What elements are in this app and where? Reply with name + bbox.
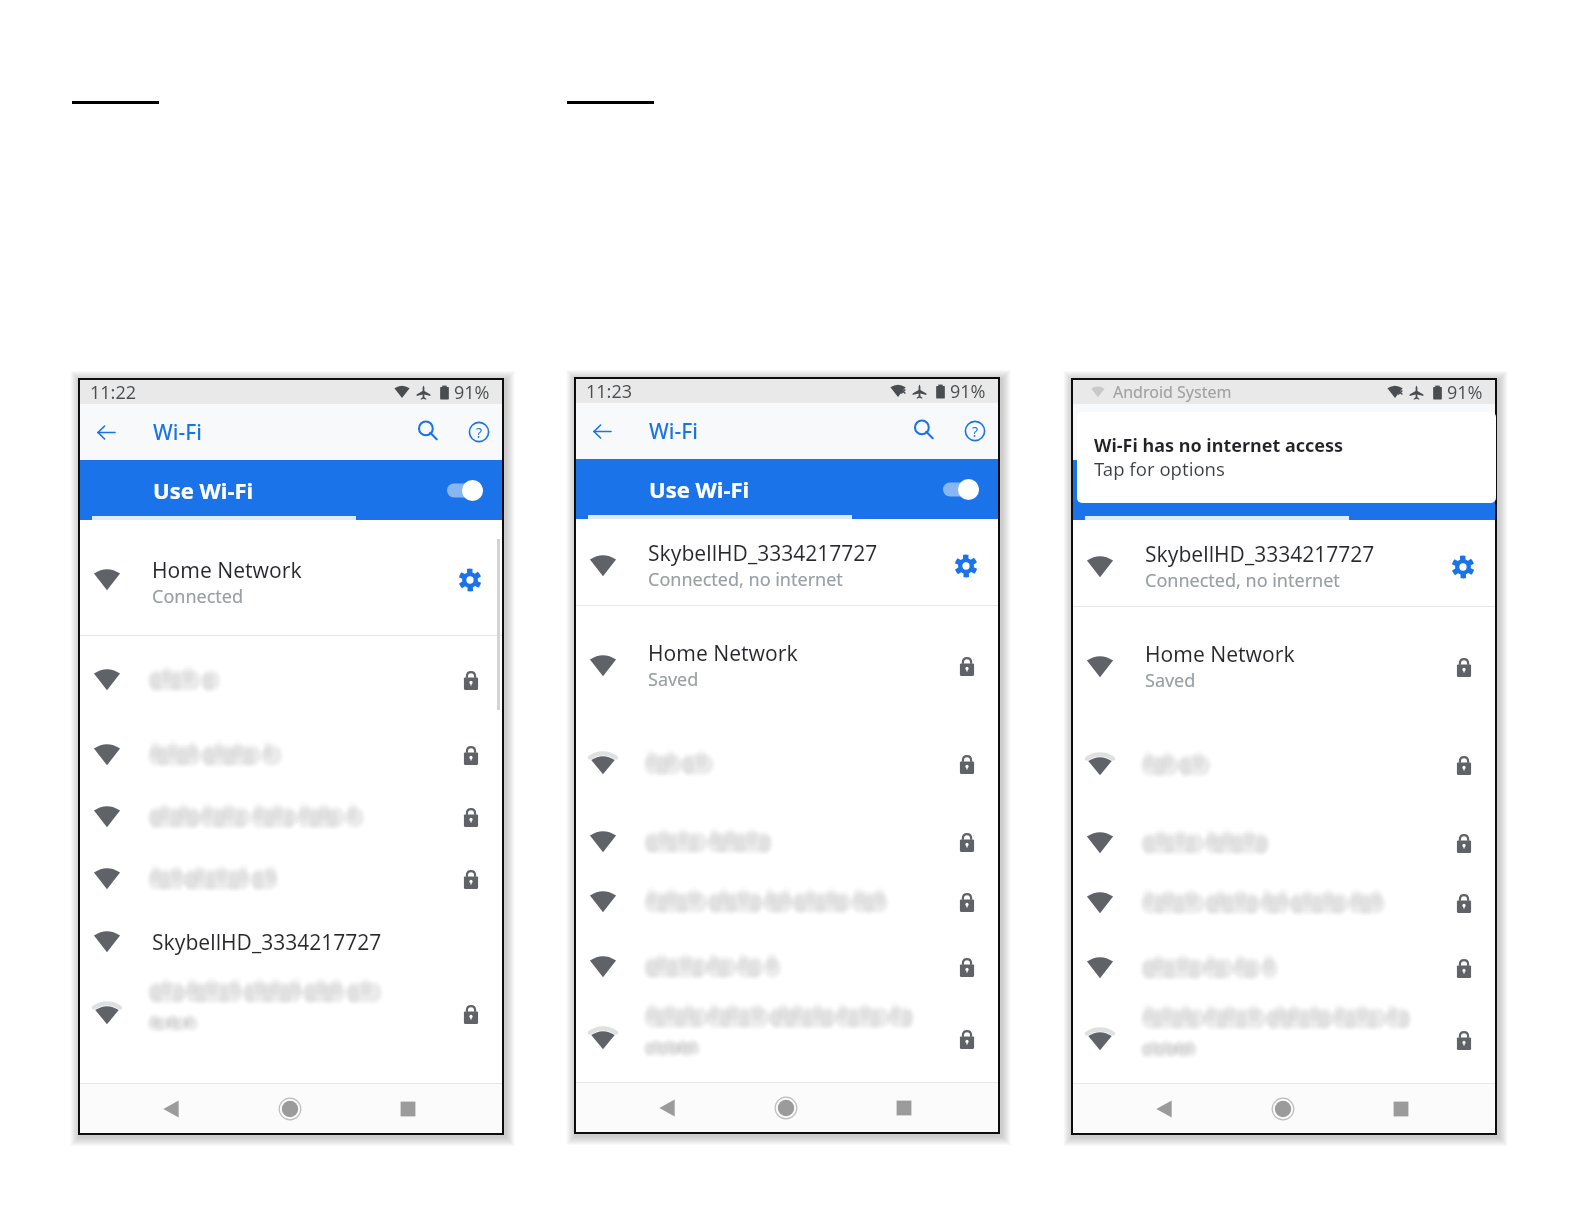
staticText: Tap for options bbox=[1094, 456, 1225, 481]
button[interactable] bbox=[576, 935, 998, 999]
staticText: Wi-Fi has no internet access bbox=[1094, 433, 1344, 458]
staticText: Saved bbox=[1145, 668, 1196, 693]
button[interactable] bbox=[1073, 733, 1495, 797]
button[interactable] bbox=[80, 982, 502, 1046]
button[interactable]: Help bbox=[462, 415, 496, 449]
button[interactable] bbox=[1073, 811, 1495, 875]
staticText: Wi-Fi bbox=[649, 417, 698, 446]
button[interactable] bbox=[576, 1007, 998, 1071]
button[interactable] bbox=[1073, 1008, 1495, 1072]
staticText: SkybellHD_3334217727 bbox=[1145, 540, 1375, 569]
button[interactable]: Recent apps bbox=[1384, 1092, 1418, 1126]
button[interactable]: Back bbox=[1147, 1092, 1181, 1126]
button[interactable] bbox=[1073, 871, 1495, 935]
staticText: Home Network bbox=[648, 639, 798, 668]
button[interactable]: Network settings bbox=[1451, 555, 1475, 579]
button[interactable]: Home Network bbox=[576, 634, 998, 698]
button[interactable]: SkybellHD_3334217727 bbox=[576, 534, 998, 598]
staticText: 91% bbox=[950, 379, 986, 403]
button[interactable]: Home bbox=[769, 1091, 803, 1125]
button[interactable] bbox=[576, 810, 998, 874]
staticText: Use Wi-Fi bbox=[1146, 475, 1247, 505]
button[interactable] bbox=[80, 723, 502, 787]
button[interactable]: Back bbox=[650, 1091, 684, 1125]
staticText: SkybellHD_3334217727 bbox=[152, 928, 382, 957]
button[interactable]: Network settings bbox=[458, 568, 482, 592]
button[interactable] bbox=[80, 648, 502, 712]
staticText: Android System bbox=[1113, 381, 1232, 403]
staticText: Connected, no internet bbox=[1145, 568, 1340, 593]
staticText: Use Wi-Fi bbox=[153, 475, 254, 505]
staticText: 11:22 bbox=[90, 380, 137, 404]
button[interactable] bbox=[1073, 936, 1495, 1000]
staticText: Wi-Fi bbox=[153, 418, 202, 447]
button[interactable]: Recent apps bbox=[887, 1091, 921, 1125]
button[interactable]: Network settings bbox=[954, 554, 978, 578]
button[interactable]: Home Network bbox=[80, 548, 502, 612]
button[interactable]: Use Wi-Fi bbox=[1073, 460, 1495, 520]
button[interactable]: Back bbox=[89, 415, 124, 450]
button[interactable] bbox=[80, 785, 502, 849]
button[interactable]: Wi-Fi has no internet access bbox=[1077, 412, 1496, 503]
button[interactable] bbox=[80, 847, 502, 911]
button[interactable]: Use Wi-Fi bbox=[80, 460, 502, 520]
staticText: Use Wi-Fi bbox=[649, 474, 750, 504]
button[interactable]: Home Network bbox=[1073, 635, 1495, 699]
button[interactable]: Back bbox=[585, 414, 620, 449]
button[interactable]: Home bbox=[1266, 1092, 1300, 1126]
staticText: Home Network bbox=[152, 556, 302, 585]
button[interactable] bbox=[576, 732, 998, 796]
staticText: 91% bbox=[1447, 380, 1483, 404]
staticText: ? bbox=[972, 422, 979, 441]
staticText: ? bbox=[476, 423, 483, 442]
staticText: SkybellHD_3334217727 bbox=[648, 539, 878, 568]
button[interactable]: Home bbox=[273, 1092, 307, 1126]
button[interactable]: Help bbox=[958, 414, 992, 448]
staticText: Home Network bbox=[1145, 640, 1295, 669]
button[interactable] bbox=[576, 870, 998, 934]
staticText: Connected, no internet bbox=[648, 567, 843, 592]
button[interactable]: SkybellHD_3334217727 bbox=[80, 910, 502, 974]
button[interactable]: Search bbox=[908, 414, 942, 448]
button[interactable]: Use Wi-Fi bbox=[576, 459, 998, 519]
button[interactable]: Back bbox=[154, 1092, 188, 1126]
button[interactable]: Recent apps bbox=[391, 1092, 425, 1126]
staticText: 91% bbox=[454, 380, 490, 404]
staticText: Saved bbox=[648, 667, 699, 692]
staticText: 11:23 bbox=[586, 379, 633, 403]
button[interactable]: Search bbox=[412, 415, 446, 449]
button[interactable]: SkybellHD_3334217727 bbox=[1073, 535, 1495, 599]
staticText: Connected bbox=[152, 584, 244, 609]
